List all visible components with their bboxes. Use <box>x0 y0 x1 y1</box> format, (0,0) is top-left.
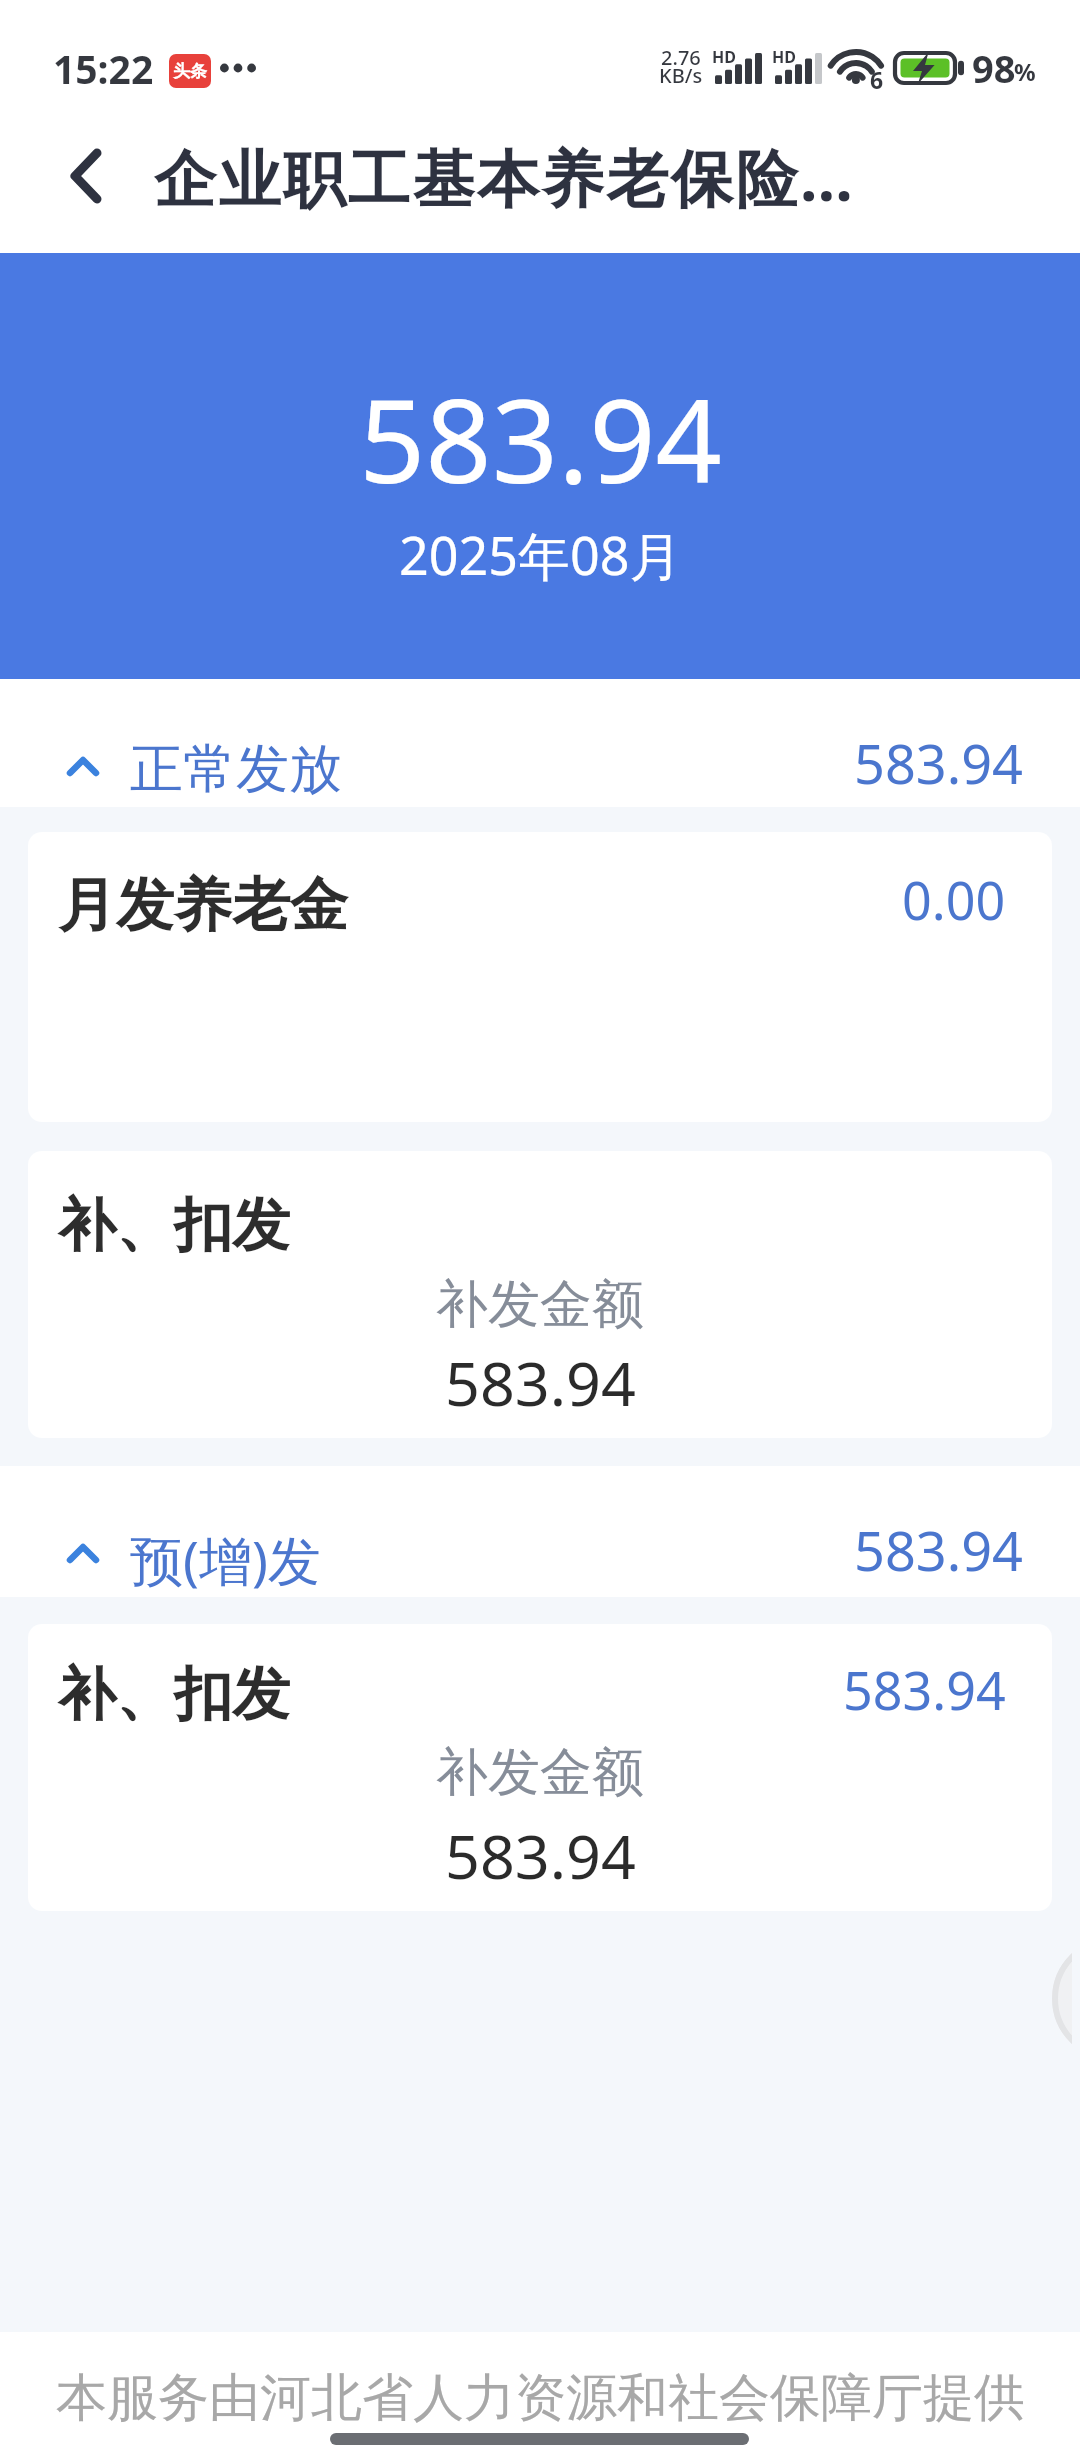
staticText: 补、扣发 <box>58 1658 290 1731</box>
staticText: 583.94 <box>854 726 1023 800</box>
staticText: 补、扣发 <box>58 1189 290 1262</box>
staticText: 6 <box>870 64 884 95</box>
staticText: 企业职工基本养老保险… <box>154 135 856 220</box>
button[interactable]: 月发养老金 <box>28 832 1052 1122</box>
staticText: 98 <box>972 42 1016 94</box>
staticText: KB/s <box>659 62 703 89</box>
staticText: 583.94 <box>445 1341 636 1424</box>
staticText: 预(增)发 <box>130 1523 321 1595</box>
staticText: HD <box>712 46 736 68</box>
button[interactable]: 补、扣发 <box>28 1151 1052 1438</box>
staticText: 头条 <box>173 61 207 82</box>
staticText: 2.76 <box>661 44 701 71</box>
staticText: 583.94 <box>854 1513 1023 1587</box>
staticText: 2025年08月 <box>399 519 682 590</box>
button[interactable]: Floating assistant <box>1052 1936 1072 2061</box>
staticText: 583.94 <box>445 1814 636 1897</box>
staticText: % <box>1014 55 1036 88</box>
button[interactable]: Back <box>20 118 148 253</box>
button[interactable]: 预(增)发 <box>0 1466 1080 1597</box>
staticText: 补发金额 <box>436 1272 644 1338</box>
staticText: 583.94 <box>843 1654 1006 1725</box>
button[interactable]: 补、扣发 <box>28 1624 1052 1911</box>
staticText: HD <box>772 46 796 68</box>
button[interactable]: 正常发放 <box>0 679 1080 807</box>
staticText: 0.00 <box>902 864 1006 935</box>
staticText: 583.94 <box>359 359 722 517</box>
staticText: 月发养老金 <box>58 869 348 942</box>
staticText: 15:22 <box>53 42 154 95</box>
staticText: 本服务由河北省人力资源和社会保障厅提供 <box>56 2366 1025 2430</box>
staticText: 正常发放 <box>130 736 342 803</box>
staticText: 补发金额 <box>436 1740 644 1806</box>
